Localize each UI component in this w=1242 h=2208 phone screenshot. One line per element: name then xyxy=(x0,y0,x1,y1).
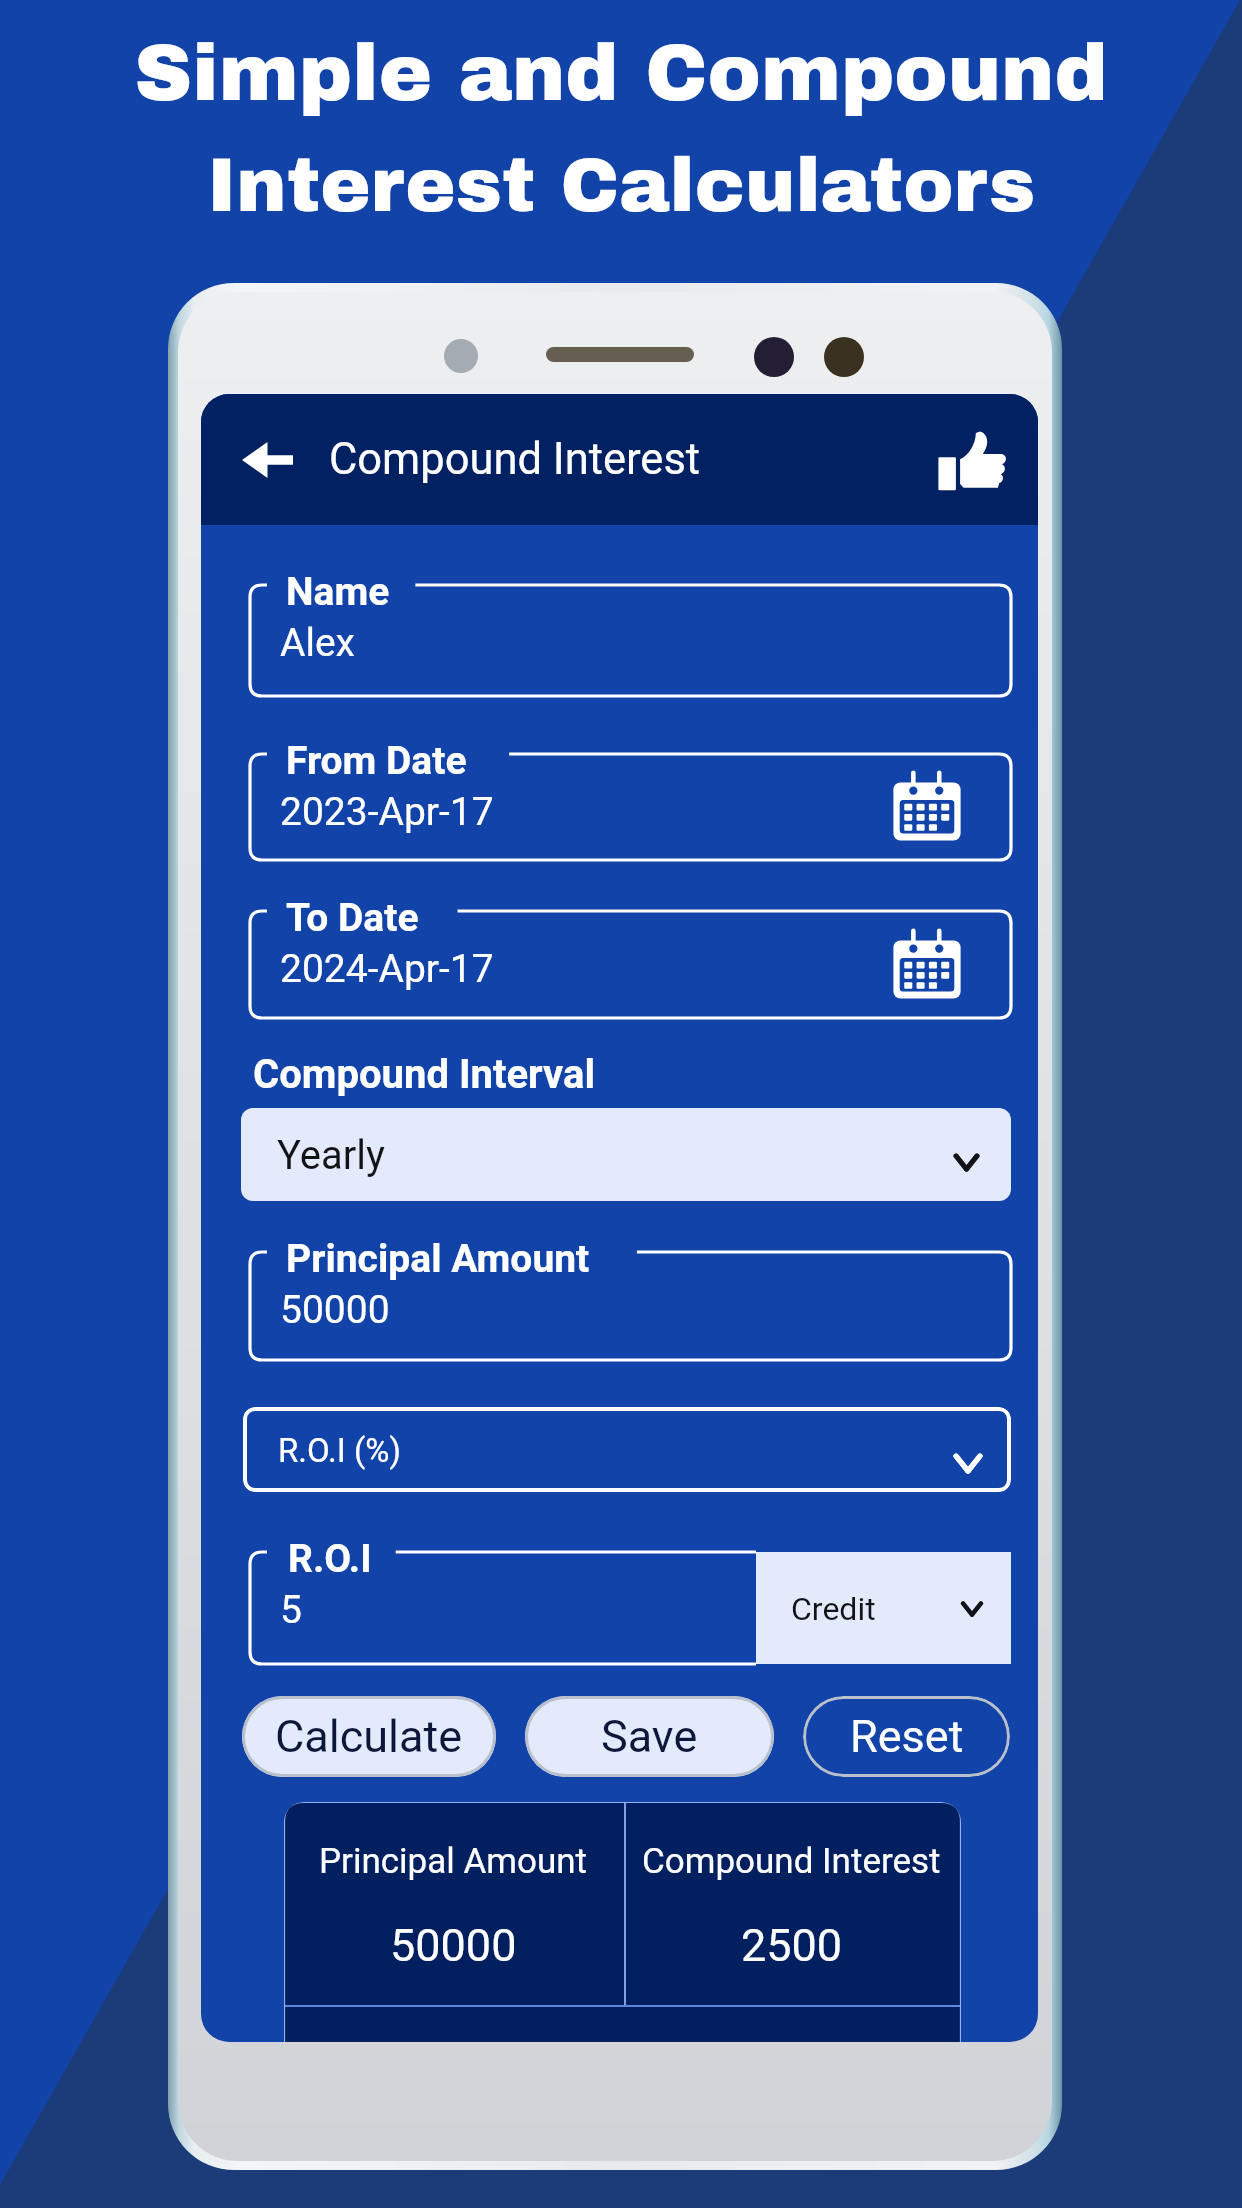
button[interactable]: Yearly xyxy=(241,1108,1011,1201)
button[interactable]: Back xyxy=(235,428,299,492)
button[interactable]: To Date xyxy=(250,911,1011,1018)
staticText: 2500 xyxy=(741,1919,843,1972)
staticText: R.O.I xyxy=(288,1536,372,1582)
staticText: 50000 xyxy=(390,1919,517,1972)
staticText: Calculate xyxy=(275,1710,463,1763)
button[interactable]: Like xyxy=(926,414,1018,506)
staticText: 5 xyxy=(280,1587,302,1633)
staticText: Compound Interest xyxy=(329,434,701,485)
staticText: From Date xyxy=(286,738,467,784)
button[interactable]: Principal Amount xyxy=(250,1252,1011,1360)
staticText: Save xyxy=(601,1710,698,1763)
staticText: Compound Interest xyxy=(642,1841,941,1882)
button[interactable]: Calculate xyxy=(242,1696,496,1777)
button[interactable]: Name xyxy=(250,585,1011,696)
staticText: Principal Amount xyxy=(286,1236,590,1282)
button[interactable]: Credit xyxy=(756,1552,1011,1664)
button[interactable]: Reset xyxy=(803,1696,1010,1777)
staticText: Principal Amount xyxy=(319,1841,588,1882)
button[interactable]: R.O.I xyxy=(250,1552,756,1664)
button[interactable]: From Date xyxy=(250,754,1011,860)
staticText: Alex xyxy=(280,620,355,666)
staticText: R.O.I (%) xyxy=(278,1431,401,1470)
staticText: 50000 xyxy=(280,1287,390,1333)
staticText: Interest Calculators xyxy=(0,145,1242,227)
button[interactable]: R.O.I (%) xyxy=(243,1407,1011,1492)
staticText: Credit xyxy=(791,1590,876,1628)
staticText: To Date xyxy=(286,895,419,941)
staticText: Yearly xyxy=(277,1132,385,1179)
button[interactable]: Save xyxy=(525,1696,774,1777)
staticText: Compound Interval xyxy=(253,1051,596,1098)
staticText: Reset xyxy=(850,1710,964,1763)
staticText: Simple and Compound xyxy=(0,30,1242,117)
staticText: Name xyxy=(286,569,390,615)
staticText: 2023-Apr-17 xyxy=(280,789,494,835)
staticText: 2024-Apr-17 xyxy=(280,946,494,992)
